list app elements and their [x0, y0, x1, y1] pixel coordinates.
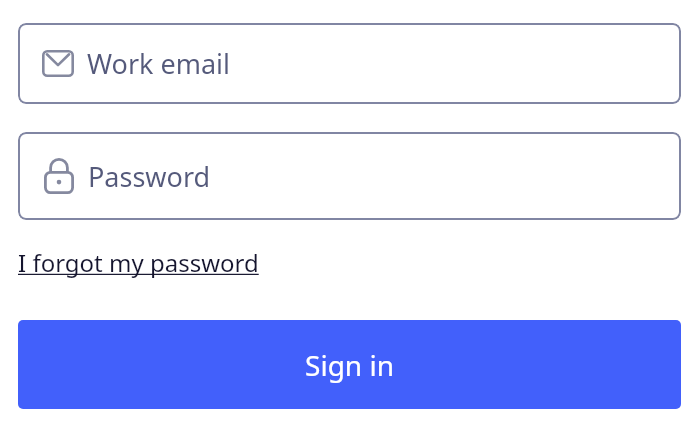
- other: Password: [44, 158, 74, 194]
- staticText: Password: [88, 158, 211, 195]
- button[interactable]: Sign in: [18, 320, 681, 409]
- button[interactable]: I forgot my password: [18, 246, 259, 279]
- staticText: Sign in: [305, 346, 394, 384]
- staticText: I forgot my password: [18, 246, 259, 279]
- staticText: Work email: [87, 45, 231, 82]
- button[interactable]: Password: [18, 132, 681, 220]
- other: Email: [42, 50, 74, 77]
- button[interactable]: Email: [18, 23, 681, 104]
